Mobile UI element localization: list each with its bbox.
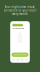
staticText: every month	[12, 12, 28, 16]
button[interactable]: Subscribe & save	[11, 52, 28, 57]
staticText: BEST VALUE	[13, 24, 22, 26]
staticText: Subscribe & save	[13, 54, 26, 56]
staticText: The Sleep Bundle	[12, 28, 24, 29]
staticText: Your night-time ritual,	[4, 5, 35, 9]
staticText: delivered to your door	[3, 9, 36, 12]
